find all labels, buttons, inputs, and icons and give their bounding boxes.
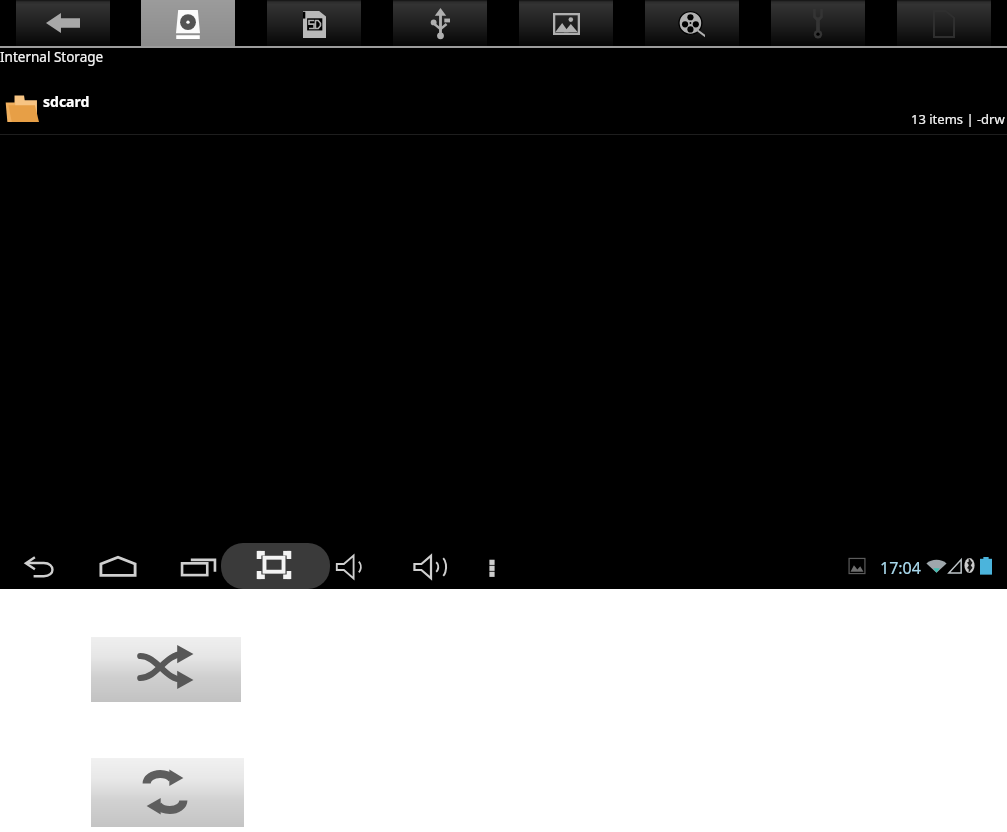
button[interactable]: Volume down <box>323 543 377 591</box>
button[interactable]: Videos <box>645 0 739 46</box>
staticText: 17:04 <box>880 557 921 579</box>
button[interactable]: More options <box>465 543 519 591</box>
button[interactable]: Volume up <box>404 543 458 591</box>
button[interactable]: Back <box>13 543 67 591</box>
button[interactable]: Home <box>91 542 145 590</box>
staticText: 13 items | -drw <box>911 110 1005 128</box>
button[interactable]: USB storage <box>393 0 487 46</box>
button[interactable]: Screenshot <box>247 541 301 589</box>
button[interactable]: Recents <box>171 543 225 591</box>
staticText: Internal Storage <box>0 48 104 66</box>
button[interactable]: SD card <box>267 0 361 46</box>
button[interactable]: Tools <box>771 0 865 46</box>
button[interactable]: Images <box>519 0 613 46</box>
staticText: sdcard <box>43 92 90 111</box>
button[interactable]: Documents <box>897 0 991 46</box>
button[interactable]: sdcard <box>0 70 1007 134</box>
button[interactable]: Back <box>16 0 110 46</box>
button[interactable]: Internal storage <box>141 0 235 46</box>
button[interactable]: Repeat <box>91 758 244 827</box>
button[interactable]: Shuffle <box>91 637 241 702</box>
